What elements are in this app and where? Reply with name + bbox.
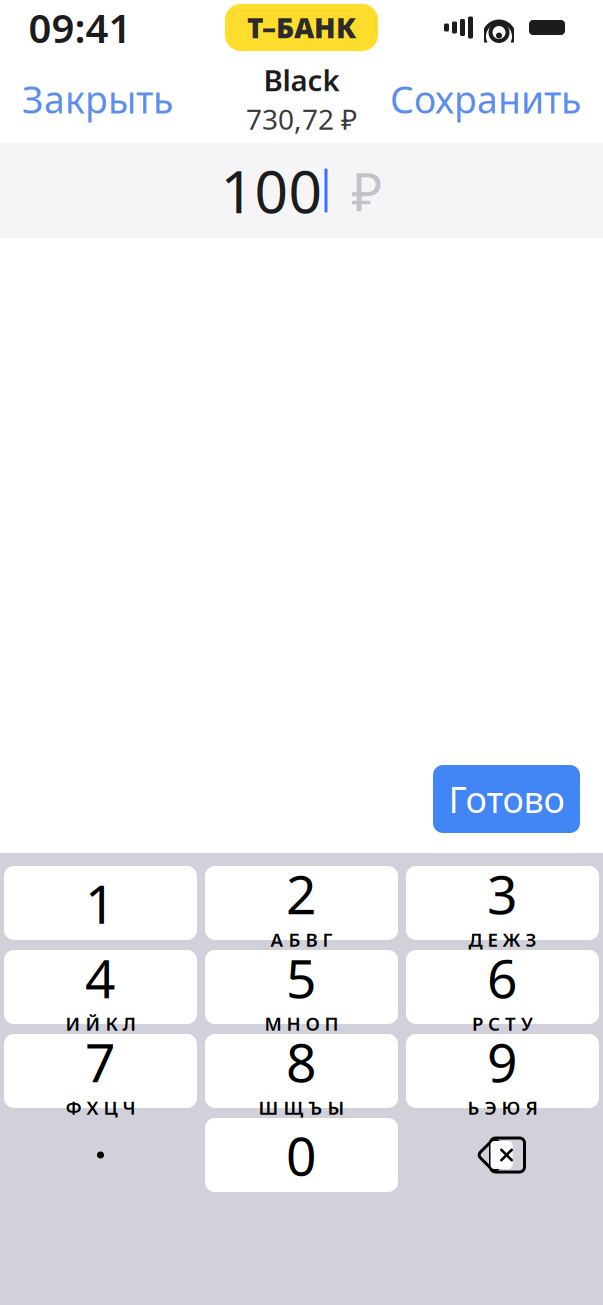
staticText: Д Е Ж З [468, 927, 536, 952]
button[interactable]: 6 [406, 950, 599, 1024]
staticText: 100 [220, 151, 322, 229]
staticText: Ь Э Ю Я [467, 1095, 537, 1120]
staticText: 09:41 [28, 1, 131, 54]
staticText: 730,72 ₽ [246, 100, 357, 138]
button[interactable]: Готово [433, 765, 580, 833]
staticText: Готово [448, 775, 564, 823]
staticText: 0 [286, 1120, 317, 1190]
staticText: 3 [487, 858, 518, 929]
staticText: Закрыть [22, 74, 173, 124]
staticText: Ш Щ Ъ Ы [258, 1095, 344, 1120]
button[interactable]: 1 [4, 866, 197, 940]
staticText: 1 [85, 868, 116, 938]
staticText: Т–БАНК [247, 9, 356, 46]
staticText: М Н О П [264, 1011, 338, 1036]
button[interactable]: 4 [4, 950, 197, 1024]
staticText: А Б В Г [270, 927, 332, 952]
staticText: Сохранить [390, 74, 581, 124]
staticText: Black [263, 60, 339, 99]
staticText: 6 [487, 942, 518, 1013]
staticText: 8 [286, 1026, 317, 1097]
staticText: 5 [286, 942, 317, 1013]
button[interactable]: 8 [205, 1034, 398, 1108]
staticText: 4 [85, 942, 116, 1013]
staticText: 2 [286, 858, 317, 929]
button[interactable]: 9 [406, 1034, 599, 1108]
staticText: И Й К Л [65, 1011, 135, 1036]
button[interactable]: 100 [0, 143, 603, 238]
button[interactable]: 0 [205, 1118, 398, 1192]
staticText: 9 [487, 1026, 518, 1097]
button[interactable]: 7 [4, 1034, 197, 1108]
button[interactable]: 5 [205, 950, 398, 1024]
button[interactable]: 3 [406, 866, 599, 940]
staticText: Р С Т У [472, 1011, 533, 1036]
button[interactable]: 2 [205, 866, 398, 940]
staticText: 7 [85, 1026, 116, 1097]
button[interactable]: Delete [406, 1118, 599, 1192]
button[interactable]: Decimal point [4, 1118, 197, 1192]
staticText: ₽ [337, 155, 382, 226]
button[interactable]: Закрыть [0, 62, 195, 136]
staticText: Ф Х Ц Ч [65, 1095, 135, 1120]
button[interactable]: Сохранить [368, 62, 603, 136]
